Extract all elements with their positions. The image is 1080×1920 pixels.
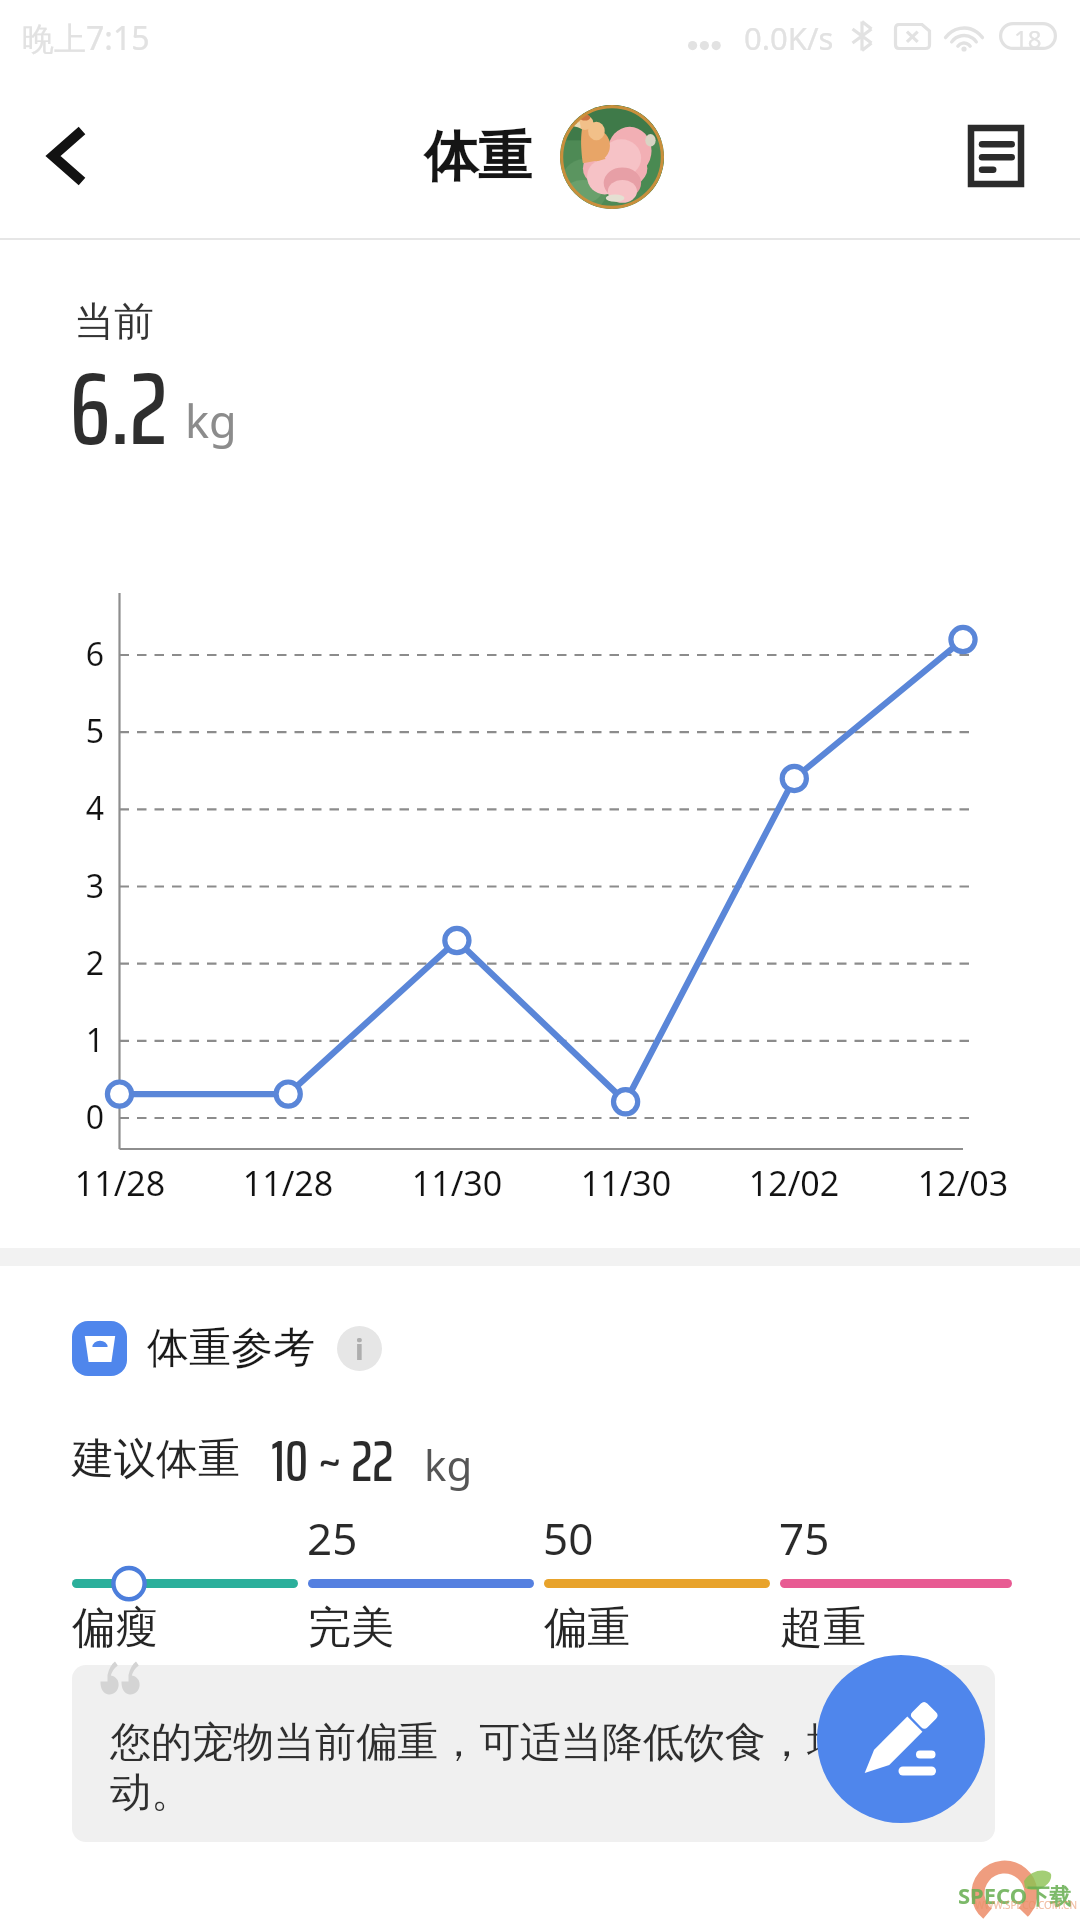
staticText: 75 bbox=[779, 1508, 830, 1568]
button[interactable]: Info bbox=[337, 1326, 382, 1371]
staticText: 完美 bbox=[308, 1601, 394, 1655]
staticText: 12/02 bbox=[714, 1160, 874, 1206]
button[interactable]: 偏瘦 bbox=[72, 1579, 298, 1588]
button[interactable]: 完美 bbox=[308, 1579, 534, 1588]
staticText: 3 bbox=[44, 864, 104, 908]
staticText: 11/28 bbox=[40, 1160, 200, 1206]
staticText: 4 bbox=[44, 786, 104, 830]
staticText: 当前 bbox=[74, 296, 154, 346]
button[interactable]: Edit weight bbox=[817, 1655, 985, 1823]
button[interactable]: Records bbox=[956, 116, 1036, 196]
staticText: 10 ~ 22 bbox=[271, 1415, 394, 1506]
staticText: 18 bbox=[1014, 22, 1042, 50]
staticText: 0 bbox=[44, 1095, 104, 1139]
button[interactable]: 超重 bbox=[780, 1579, 1012, 1588]
staticText: 5 bbox=[44, 709, 104, 753]
staticText: 6 bbox=[44, 632, 104, 676]
staticText: 晚上7:15 bbox=[22, 16, 150, 60]
button[interactable]: Back bbox=[25, 109, 107, 203]
staticText: 偏重 bbox=[544, 1601, 630, 1655]
staticText: 11/28 bbox=[208, 1160, 368, 1206]
staticText: 您的宠物当前偏重，可适当降低饮食，增加运 动。 bbox=[110, 1717, 930, 1819]
staticText: WWW.SPECO.COM.CN bbox=[975, 1898, 1077, 1912]
staticText: kg bbox=[424, 1436, 473, 1493]
button[interactable]: 偏重 bbox=[544, 1579, 770, 1588]
staticText: 偏瘦 bbox=[72, 1601, 158, 1655]
staticText: SPECO下载 bbox=[958, 1880, 1072, 1910]
staticText: 体重 bbox=[424, 123, 532, 191]
staticText: 25 bbox=[307, 1508, 358, 1568]
staticText: 0.0K/s bbox=[744, 17, 834, 59]
staticText: 11/30 bbox=[546, 1160, 706, 1206]
staticText: 12/03 bbox=[883, 1160, 1043, 1206]
staticText: 50 bbox=[543, 1508, 594, 1568]
staticText: 体重参考 bbox=[147, 1322, 315, 1375]
staticText: 11/30 bbox=[377, 1160, 537, 1206]
staticText: 超重 bbox=[780, 1601, 866, 1655]
staticText: 建议体重 bbox=[72, 1433, 240, 1486]
staticText: kg bbox=[185, 390, 237, 451]
staticText: i bbox=[355, 1329, 364, 1368]
staticText: 1 bbox=[44, 1018, 104, 1062]
staticText: 2 bbox=[44, 941, 104, 985]
staticText: 6.2 bbox=[70, 327, 168, 489]
